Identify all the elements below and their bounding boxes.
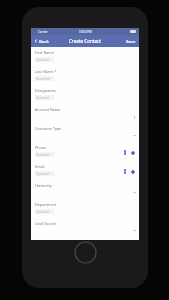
button[interactable]: Account Name [31, 104, 139, 123]
staticText: Last Name * [35, 69, 57, 74]
button[interactable]: Add Phone [130, 150, 136, 156]
staticText: First Name [35, 50, 54, 55]
button[interactable]: Add Email [130, 169, 136, 175]
staticText: Lead Source [35, 221, 57, 226]
other: Open Lead Source list [133, 229, 136, 232]
button[interactable]: Hierarchy [31, 180, 139, 199]
staticText: Back [39, 38, 49, 44]
button[interactable]: More Email options [123, 168, 127, 175]
button[interactable]: Designation [31, 85, 139, 104]
staticText: Create Contact [69, 38, 101, 44]
button[interactable]: Home [74, 241, 97, 264]
staticText: Email [35, 164, 45, 169]
other: Open Customer Type list [133, 134, 136, 137]
staticText: Required [36, 77, 50, 81]
other: Choose Account Name [133, 116, 136, 119]
staticText: 10:52 PM [79, 30, 92, 34]
button[interactable]: Phone [31, 142, 139, 161]
staticText: Department [35, 202, 57, 207]
button[interactable]: More Phone options [123, 149, 127, 156]
staticText: Optional [36, 58, 49, 62]
staticText: Save [126, 38, 136, 44]
button[interactable]: Email [31, 161, 139, 180]
staticText: Phone [35, 145, 47, 150]
button[interactable]: Customer Type [31, 123, 139, 142]
staticText: Optional [36, 96, 49, 100]
staticText: Carrier [38, 30, 48, 34]
button[interactable]: Lead Source [31, 218, 139, 237]
staticText: Optional [36, 210, 49, 214]
button[interactable]: Save [123, 36, 139, 46]
button[interactable]: Back [31, 36, 52, 46]
other: Open Hierarchy list [133, 191, 136, 194]
staticText: Customer Type [35, 126, 62, 131]
staticText: Optional [36, 153, 49, 157]
staticText: Optional [36, 172, 49, 176]
staticText: Account Name [35, 107, 61, 112]
button[interactable]: First Name [31, 47, 139, 66]
staticText: Designation [35, 88, 56, 93]
staticText: Hierarchy [35, 183, 52, 188]
button[interactable]: Department [31, 199, 139, 218]
button[interactable]: Last Name * [31, 66, 139, 85]
